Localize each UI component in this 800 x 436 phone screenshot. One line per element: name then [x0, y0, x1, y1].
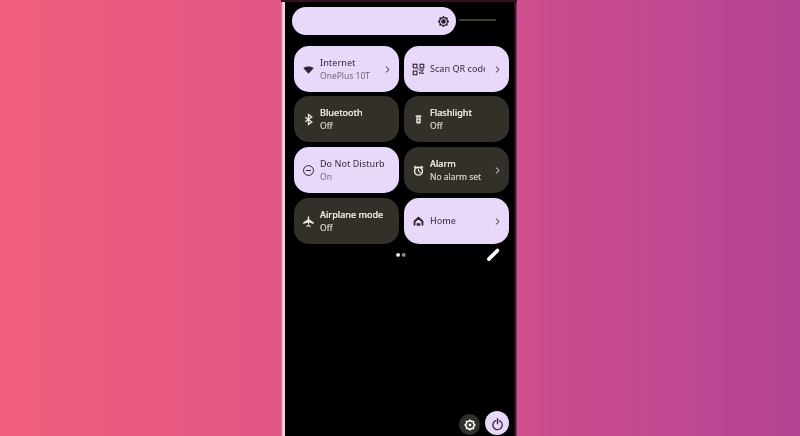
button[interactable]: Brightness — [292, 7, 456, 35]
staticText: Bluetooth — [320, 106, 363, 118]
staticText: Scan QR code — [430, 62, 485, 73]
staticText: OnePlus 10T — [320, 70, 371, 79]
button[interactable]: Airplane mode — [294, 198, 399, 244]
button[interactable]: Flashlight — [404, 96, 509, 142]
staticText: No alarm set — [430, 171, 482, 180]
staticText: Off — [320, 222, 333, 231]
staticText: Off — [430, 120, 443, 129]
staticText: Home — [430, 214, 456, 225]
staticText: Alarm — [430, 157, 456, 169]
staticText: Do Not Disturb — [320, 157, 385, 169]
button[interactable]: Do Not Disturb — [294, 147, 399, 193]
button[interactable]: Internet — [294, 46, 399, 92]
button[interactable]: Alarm — [404, 147, 509, 193]
button[interactable]: Bluetooth — [294, 96, 399, 142]
button[interactable]: Power — [485, 411, 509, 435]
button[interactable]: Home — [404, 198, 509, 244]
button[interactable]: Scan QR code — [404, 46, 509, 92]
staticText: Flashlight — [430, 106, 472, 118]
staticText: Internet — [320, 56, 356, 68]
staticText: On — [320, 171, 332, 180]
button[interactable]: Settings — [459, 414, 480, 435]
staticText: Off — [320, 120, 333, 129]
button[interactable]: Edit — [485, 247, 501, 263]
staticText: Airplane mode — [320, 208, 384, 220]
